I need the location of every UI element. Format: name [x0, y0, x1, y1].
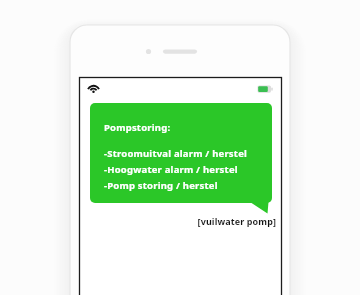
button[interactable]: Wi-Fi signal	[86, 83, 102, 97]
button[interactable]: [vuilwater pomp]	[196, 213, 276, 229]
staticText: -Pomp storing / herstel	[104, 179, 218, 192]
staticText: -Stroomuitval alarm / herstel	[104, 147, 248, 160]
staticText: [vuilwater pomp]	[197, 215, 276, 227]
button[interactable]: Pompstoring:	[90, 103, 272, 203]
button[interactable]: Battery status	[256, 83, 276, 96]
staticText: -Hoogwater alarm / herstel	[104, 163, 238, 176]
staticText: Pompstoring:	[104, 121, 171, 134]
